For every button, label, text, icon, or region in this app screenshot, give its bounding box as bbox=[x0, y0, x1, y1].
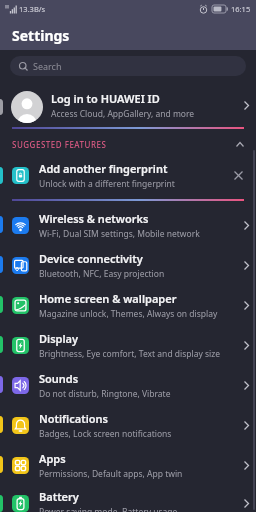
staticText: Brightness, Eye comfort, Text and displa… bbox=[39, 348, 221, 360]
staticText: 13.3B/s bbox=[19, 4, 46, 14]
staticText: Unlock with a different fingerprint bbox=[39, 178, 175, 190]
staticText: Home screen & wallpaper bbox=[39, 291, 177, 306]
button[interactable]: Device connectivity bbox=[0, 245, 256, 285]
staticText: Do not disturb, Ringtone, Vibrate bbox=[39, 388, 171, 400]
button[interactable]: Search bbox=[10, 56, 246, 76]
button[interactable]: Display bbox=[0, 325, 256, 365]
staticText: Sounds bbox=[39, 371, 79, 386]
staticText: Power saving mode, Battery usage bbox=[39, 506, 178, 512]
staticText: 16:15 bbox=[231, 4, 251, 14]
staticText: Bluetooth, NFC, Easy projection bbox=[39, 268, 165, 280]
staticText: Apps bbox=[39, 451, 66, 466]
staticText: Display bbox=[39, 331, 79, 346]
button[interactable]: Home screen & wallpaper bbox=[0, 285, 256, 325]
button[interactable]: Log in to HUAWEI ID bbox=[0, 84, 256, 126]
staticText: Permissions, Default apps, App twin bbox=[39, 468, 183, 480]
button[interactable]: Wireless & networks bbox=[0, 205, 256, 245]
button[interactable]: Battery bbox=[0, 483, 256, 512]
staticText: Add another fingerprint bbox=[39, 161, 168, 176]
button[interactable]: Notifications bbox=[0, 405, 256, 445]
staticText: SUGGESTED FEATURES bbox=[12, 139, 107, 150]
button[interactable]: Sounds bbox=[0, 365, 256, 405]
staticText: Search bbox=[33, 60, 62, 72]
button[interactable]: Apps bbox=[0, 445, 256, 485]
staticText: Wi-Fi, Dual SIM settings, Mobile network bbox=[39, 228, 200, 240]
staticText: Wireless & networks bbox=[39, 211, 149, 226]
staticText: Device connectivity bbox=[39, 251, 143, 266]
staticText: Magazine unlock, Themes, Always on displ… bbox=[39, 308, 218, 320]
staticText: Log in to HUAWEI ID bbox=[51, 91, 160, 106]
staticText: Settings bbox=[12, 26, 70, 45]
staticText: Battery bbox=[39, 489, 79, 504]
staticText: Badges, Lock screen notifications bbox=[39, 428, 172, 440]
staticText: Notifications bbox=[39, 411, 109, 426]
staticText: Access Cloud, AppGallery, and more bbox=[51, 108, 195, 120]
button[interactable] bbox=[234, 171, 243, 180]
button[interactable]: Add another fingerprint bbox=[0, 155, 256, 195]
